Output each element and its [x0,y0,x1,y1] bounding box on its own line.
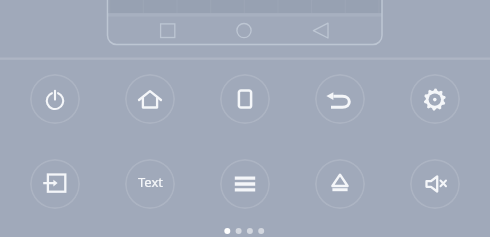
button[interactable]: Input [30,159,80,209]
button[interactable]: Text [125,159,175,209]
button[interactable]: Menu [220,159,270,209]
staticText: Text [138,173,163,191]
button[interactable]: Home [125,74,175,124]
button[interactable]: Eject [315,159,365,209]
button[interactable]: Mute [410,159,460,209]
button[interactable]: Screen [220,74,270,124]
button[interactable]: Power [30,74,80,124]
button[interactable]: Settings [410,74,460,124]
button[interactable]: Back [315,74,365,124]
